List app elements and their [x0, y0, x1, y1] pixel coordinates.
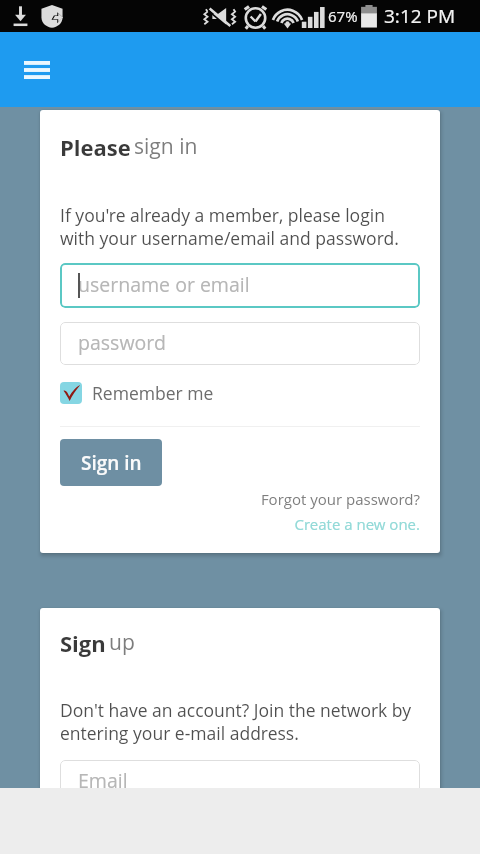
- staticText: If you're already a member, please login…: [60, 203, 399, 251]
- staticText: 3:12 PM: [384, 3, 456, 29]
- button[interactable]: Open navigation menu: [14, 47, 60, 93]
- button[interactable]: password: [60, 322, 420, 365]
- staticText: 67%: [328, 6, 358, 26]
- staticText: Remember me: [92, 381, 214, 405]
- staticText: up: [109, 628, 135, 657]
- staticText: Please: [60, 132, 137, 162]
- staticText: Sign: [60, 628, 112, 658]
- staticText: username or email: [78, 271, 250, 298]
- staticText: Sign in: [81, 450, 142, 476]
- button[interactable]: username or email: [60, 263, 420, 308]
- button[interactable]: Sign in: [60, 439, 162, 486]
- button[interactable]: Remember me: [60, 381, 214, 405]
- button[interactable]: Forgot your password?: [60, 489, 420, 509]
- staticText: Email: [78, 767, 128, 794]
- button[interactable]: Create a new one.: [60, 514, 420, 534]
- staticText: Don't have an account? Join the network …: [60, 698, 412, 746]
- button[interactable]: Email: [60, 760, 420, 803]
- staticText: sign in: [134, 132, 198, 161]
- staticText: password: [78, 329, 166, 356]
